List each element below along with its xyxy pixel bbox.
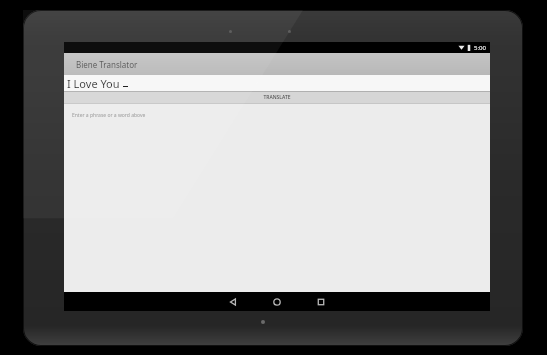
staticText: Enter a phrase or a word above [72,112,146,119]
button[interactable]: TRANSLATE [64,92,490,103]
staticText: I Love You [67,76,120,91]
button[interactable]: I Love You [64,75,490,92]
staticText: TRANSLATE [263,94,291,101]
button[interactable]: Home [262,292,292,311]
staticText: 5:00 [474,44,486,52]
staticText: Biene Translator [76,59,138,70]
button[interactable]: Back [218,292,248,311]
button[interactable]: Recent apps [306,292,336,311]
